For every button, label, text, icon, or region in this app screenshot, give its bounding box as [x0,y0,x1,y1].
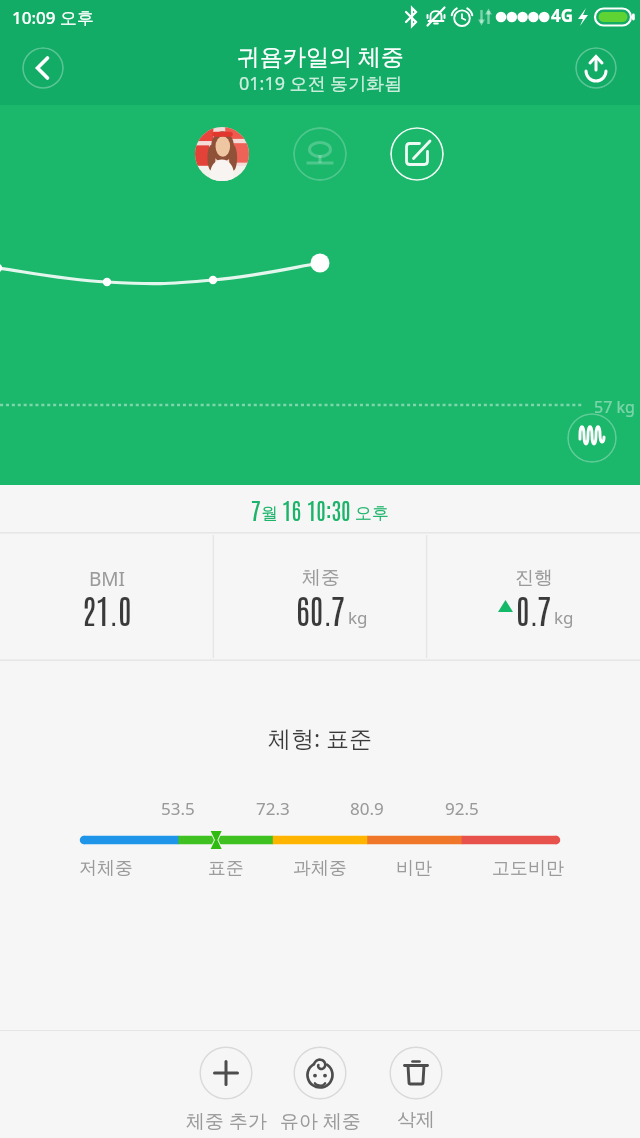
staticText: kg [554,606,574,629]
button[interactable]: Back [22,47,64,89]
staticText: 72.3 [256,797,290,820]
staticText: 4G [551,4,574,27]
button[interactable]: Profile photo [195,127,249,181]
staticText: 80.9 [350,797,384,820]
button[interactable]: 삭제 [361,1047,471,1132]
button[interactable]: 체중 추가 [171,1047,281,1134]
button[interactable]: 체중 [214,532,427,661]
staticText: 92.5 [445,797,479,820]
staticText: BMI [89,566,126,592]
button[interactable]: Scale [293,127,347,181]
button[interactable]: 유아 체중 [265,1047,375,1134]
staticText: 표준 [208,857,244,880]
staticText: 0.7 [516,588,551,631]
button[interactable]: 7 [0,485,640,532]
staticText: 53.5 [161,797,195,820]
staticText: 월 [261,503,278,524]
staticText: 유아 체중 [280,1108,361,1134]
button[interactable]: Share [575,47,617,89]
staticText: 비만 [396,857,432,880]
staticText: 귀욤카일의 체중 [237,40,404,71]
staticText: 오후 [355,503,389,524]
staticText: 삭제 [397,1108,435,1132]
staticText: kg [348,606,368,629]
button[interactable]: Edit [390,127,444,181]
button[interactable]: BMI [0,532,214,661]
staticText: 10:09 오후 [12,6,94,29]
staticText: 진행 [515,566,553,590]
staticText: 16 10:30 [282,494,351,524]
staticText: 60.7 [296,588,345,631]
staticText: 체중 [302,566,340,590]
staticText: 57 kg [594,396,635,418]
staticText: 고도비만 [492,857,564,880]
button[interactable]: 진행 [427,532,640,661]
staticText: 체중 추가 [186,1108,267,1134]
staticText: 01:19 오전 동기화됨 [239,71,403,96]
staticText: 과체중 [293,857,347,880]
staticText: 체형: 표준 [268,722,373,753]
staticText: 7 [251,494,261,524]
staticText: 21.0 [82,588,132,631]
staticText: 저체중 [79,857,133,880]
button[interactable]: Body composition [567,413,617,463]
